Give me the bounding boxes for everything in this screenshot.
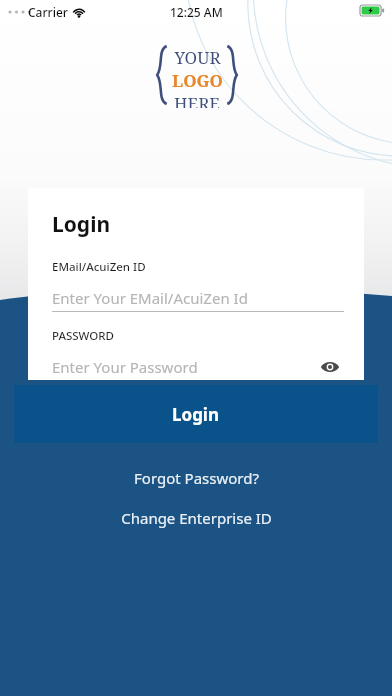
button[interactable]: Login	[14, 385, 378, 443]
button[interactable]: Forgot Password?	[114, 464, 279, 492]
staticText: Forgot Password?	[134, 468, 259, 488]
staticText: LOGO	[172, 69, 223, 92]
staticText: Login	[172, 403, 220, 426]
staticText: PASSWORD	[52, 328, 115, 344]
staticText: Change Enterprise ID	[121, 508, 272, 528]
staticText: EMail/AcuiZen ID	[52, 259, 146, 275]
button[interactable]: Change Enterprise ID	[101, 504, 292, 532]
button[interactable]: Enter Your Password	[52, 357, 316, 377]
button[interactable]: Show password	[316, 354, 344, 380]
staticText: Login	[52, 210, 111, 239]
staticText: Enter Your Password	[52, 357, 198, 377]
staticText: Carrier	[28, 4, 68, 20]
staticText: YOUR	[174, 46, 221, 69]
button[interactable]: Enter Your EMail/AcuiZen Id	[52, 285, 344, 311]
staticText: Enter Your EMail/AcuiZen Id	[52, 288, 248, 308]
staticText: HERE	[174, 92, 220, 108]
staticText: 12:25 AM	[170, 4, 223, 20]
